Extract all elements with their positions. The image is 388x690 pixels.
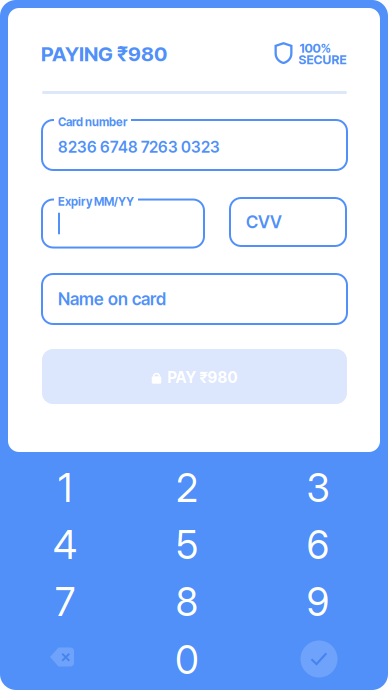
- button[interactable]: 5: [127, 516, 247, 573]
- staticText: SECURE: [298, 52, 346, 67]
- button[interactable]: 0: [127, 631, 247, 688]
- staticText: 7: [55, 579, 75, 625]
- button[interactable]: 1: [5, 459, 125, 516]
- staticText: 0: [175, 637, 199, 683]
- staticText: 4: [53, 522, 77, 568]
- staticText: 3: [306, 465, 329, 511]
- button[interactable]: 4: [5, 516, 125, 573]
- button[interactable]: 9: [258, 573, 378, 630]
- staticText: 5: [176, 522, 198, 568]
- button[interactable]: 8: [127, 573, 247, 630]
- button[interactable]: PAY ₹980: [42, 349, 347, 404]
- staticText: 9: [306, 579, 329, 625]
- button[interactable]: Confirm: [259, 630, 379, 687]
- staticText: PAYING ₹980: [41, 42, 167, 66]
- staticText: 2: [176, 465, 198, 511]
- button[interactable]: 2: [127, 459, 247, 516]
- staticText: 6: [306, 522, 329, 568]
- staticText: 8: [175, 579, 198, 625]
- button[interactable]: 7: [5, 573, 125, 630]
- button[interactable]: Delete: [2, 628, 122, 685]
- staticText: Name on card: [58, 289, 166, 309]
- staticText: 100%: [299, 40, 330, 56]
- staticText: 1: [58, 465, 72, 511]
- button[interactable]: 6: [258, 516, 378, 573]
- button[interactable]: 3: [258, 459, 378, 516]
- staticText: CVV: [246, 212, 282, 232]
- staticText: PAY ₹980: [167, 368, 237, 387]
- staticText: Card number: [58, 115, 127, 129]
- staticText: 8236 6748 7263 0323: [58, 138, 220, 156]
- staticText: Expiry MM/YY: [58, 194, 134, 208]
